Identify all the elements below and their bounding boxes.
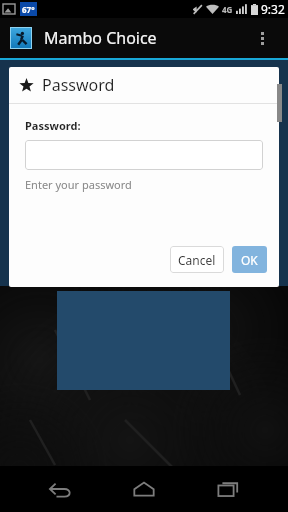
staticText: Password (42, 74, 115, 96)
button[interactable] (25, 140, 263, 170)
staticText: 9:32 (261, 1, 285, 17)
staticText: Mambo Choice (44, 27, 157, 49)
button[interactable]: Recent apps (204, 466, 252, 512)
button[interactable]: Home (120, 466, 168, 512)
staticText: 4G (222, 4, 233, 15)
staticText: Enter your password (25, 177, 132, 192)
staticText: 67° (22, 4, 35, 15)
staticText: OK (241, 252, 258, 268)
staticText: Cancel (178, 252, 216, 268)
button[interactable]: Back (36, 466, 84, 512)
button[interactable]: Cancel (170, 246, 224, 273)
button[interactable]: More options (246, 22, 278, 54)
button[interactable]: OK (232, 246, 267, 273)
staticText: Password: (25, 118, 81, 133)
